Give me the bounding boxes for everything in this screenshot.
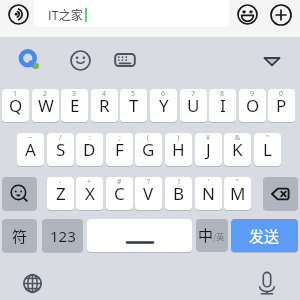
staticText: 9 [250, 89, 255, 99]
staticText: N [202, 182, 215, 205]
staticText: /英 [213, 231, 225, 243]
button[interactable]: 123 [42, 219, 83, 252]
staticText: & [235, 133, 241, 143]
staticText: 发送 [249, 225, 280, 247]
button[interactable]: J [195, 133, 222, 166]
staticText: - [59, 177, 62, 187]
button[interactable]: U [180, 89, 207, 122]
staticText: ~ [28, 133, 33, 143]
button[interactable]: K [224, 133, 251, 166]
button[interactable]: QQ input method [16, 47, 42, 73]
button[interactable]: IT之家 [34, 0, 229, 27]
button[interactable]: Keyboard layout [112, 47, 138, 73]
staticText: " [236, 177, 239, 187]
button[interactable]: O [239, 89, 266, 122]
button[interactable]: P [268, 89, 295, 122]
button[interactable]: F [106, 133, 133, 166]
staticText: A [25, 138, 36, 161]
button[interactable]: T [120, 89, 147, 122]
staticText: S [56, 138, 66, 161]
button[interactable]: G [135, 133, 162, 166]
staticText: 7 [191, 89, 196, 99]
button[interactable]: C [106, 177, 133, 210]
button[interactable]: H [165, 133, 192, 166]
staticText: T [129, 94, 139, 117]
staticText: IT之家 [48, 6, 83, 23]
staticText: J [206, 138, 211, 161]
staticText: + [87, 177, 92, 187]
staticText: L [263, 138, 272, 161]
staticText: : [89, 133, 91, 143]
staticText: O [246, 94, 260, 117]
staticText: R [99, 94, 110, 117]
button[interactable]: M [224, 177, 251, 210]
button[interactable]: Q [2, 89, 29, 122]
staticText: 6 [161, 89, 166, 99]
staticText: ) [177, 133, 180, 143]
staticText: Z [56, 182, 66, 205]
button[interactable]: X [76, 177, 103, 210]
button[interactable]: 符 [2, 219, 37, 252]
button[interactable]: Stickers [67, 47, 93, 73]
staticText: ' [208, 177, 210, 187]
button[interactable]: More options [267, 1, 294, 28]
staticText: U [187, 94, 200, 117]
button[interactable]: W [32, 89, 59, 122]
staticText: 符 [12, 225, 28, 247]
button[interactable]: S [47, 133, 74, 166]
staticText: C [114, 182, 125, 205]
button[interactable]: Voice input [5, 1, 32, 28]
staticText: H [172, 138, 185, 161]
button[interactable]: V [135, 177, 162, 210]
button[interactable]: Space [87, 219, 192, 252]
staticText: ! [178, 177, 180, 187]
staticText: Q [9, 94, 23, 117]
staticText: V [143, 182, 154, 205]
staticText: " [266, 133, 269, 143]
button[interactable]: Emoji [234, 1, 261, 28]
button[interactable]: Emoji search [2, 177, 37, 210]
button[interactable]: Chinese English toggle [196, 219, 228, 252]
staticText: G [142, 138, 155, 161]
button[interactable]: Voice input [254, 270, 280, 296]
button[interactable]: L [254, 133, 281, 166]
button[interactable]: Switch language [19, 270, 45, 296]
staticText: ¥ [206, 133, 211, 143]
button[interactable]: E [61, 89, 88, 122]
staticText: 4 [102, 89, 107, 99]
staticText: 2 [43, 89, 48, 99]
staticText: Y [159, 94, 169, 117]
staticText: M [230, 182, 246, 205]
button[interactable]: B [165, 177, 192, 210]
staticText: K [232, 138, 243, 161]
staticText: 8 [220, 89, 225, 99]
staticText: D [83, 138, 96, 161]
staticText: 0 [279, 89, 284, 99]
staticText: X [85, 182, 95, 205]
staticText: B [173, 182, 185, 205]
staticText: ( [147, 133, 150, 143]
staticText: 3 [72, 89, 77, 99]
staticText: P [276, 94, 287, 117]
button[interactable]: 发送 [231, 219, 298, 252]
staticText: ; [119, 133, 121, 143]
staticText: 5 [131, 89, 136, 99]
button[interactable]: R [91, 89, 118, 122]
staticText: F [115, 138, 124, 161]
staticText: 中 [198, 224, 214, 246]
staticText: 123 [50, 226, 76, 246]
staticText: # [117, 177, 122, 187]
button[interactable]: I [209, 89, 236, 122]
button[interactable]: N [195, 177, 222, 210]
staticText: W [38, 94, 54, 117]
button[interactable]: Y [150, 89, 177, 122]
button[interactable]: Z [47, 177, 74, 210]
staticText: I [220, 94, 226, 117]
button[interactable]: Hide keyboard [259, 47, 285, 73]
button[interactable]: Backspace [263, 177, 298, 210]
staticText: E [70, 94, 80, 117]
button[interactable]: D [76, 133, 103, 166]
staticText: ? [147, 177, 151, 187]
button[interactable]: A [17, 133, 44, 166]
staticText: 1 [13, 89, 18, 99]
